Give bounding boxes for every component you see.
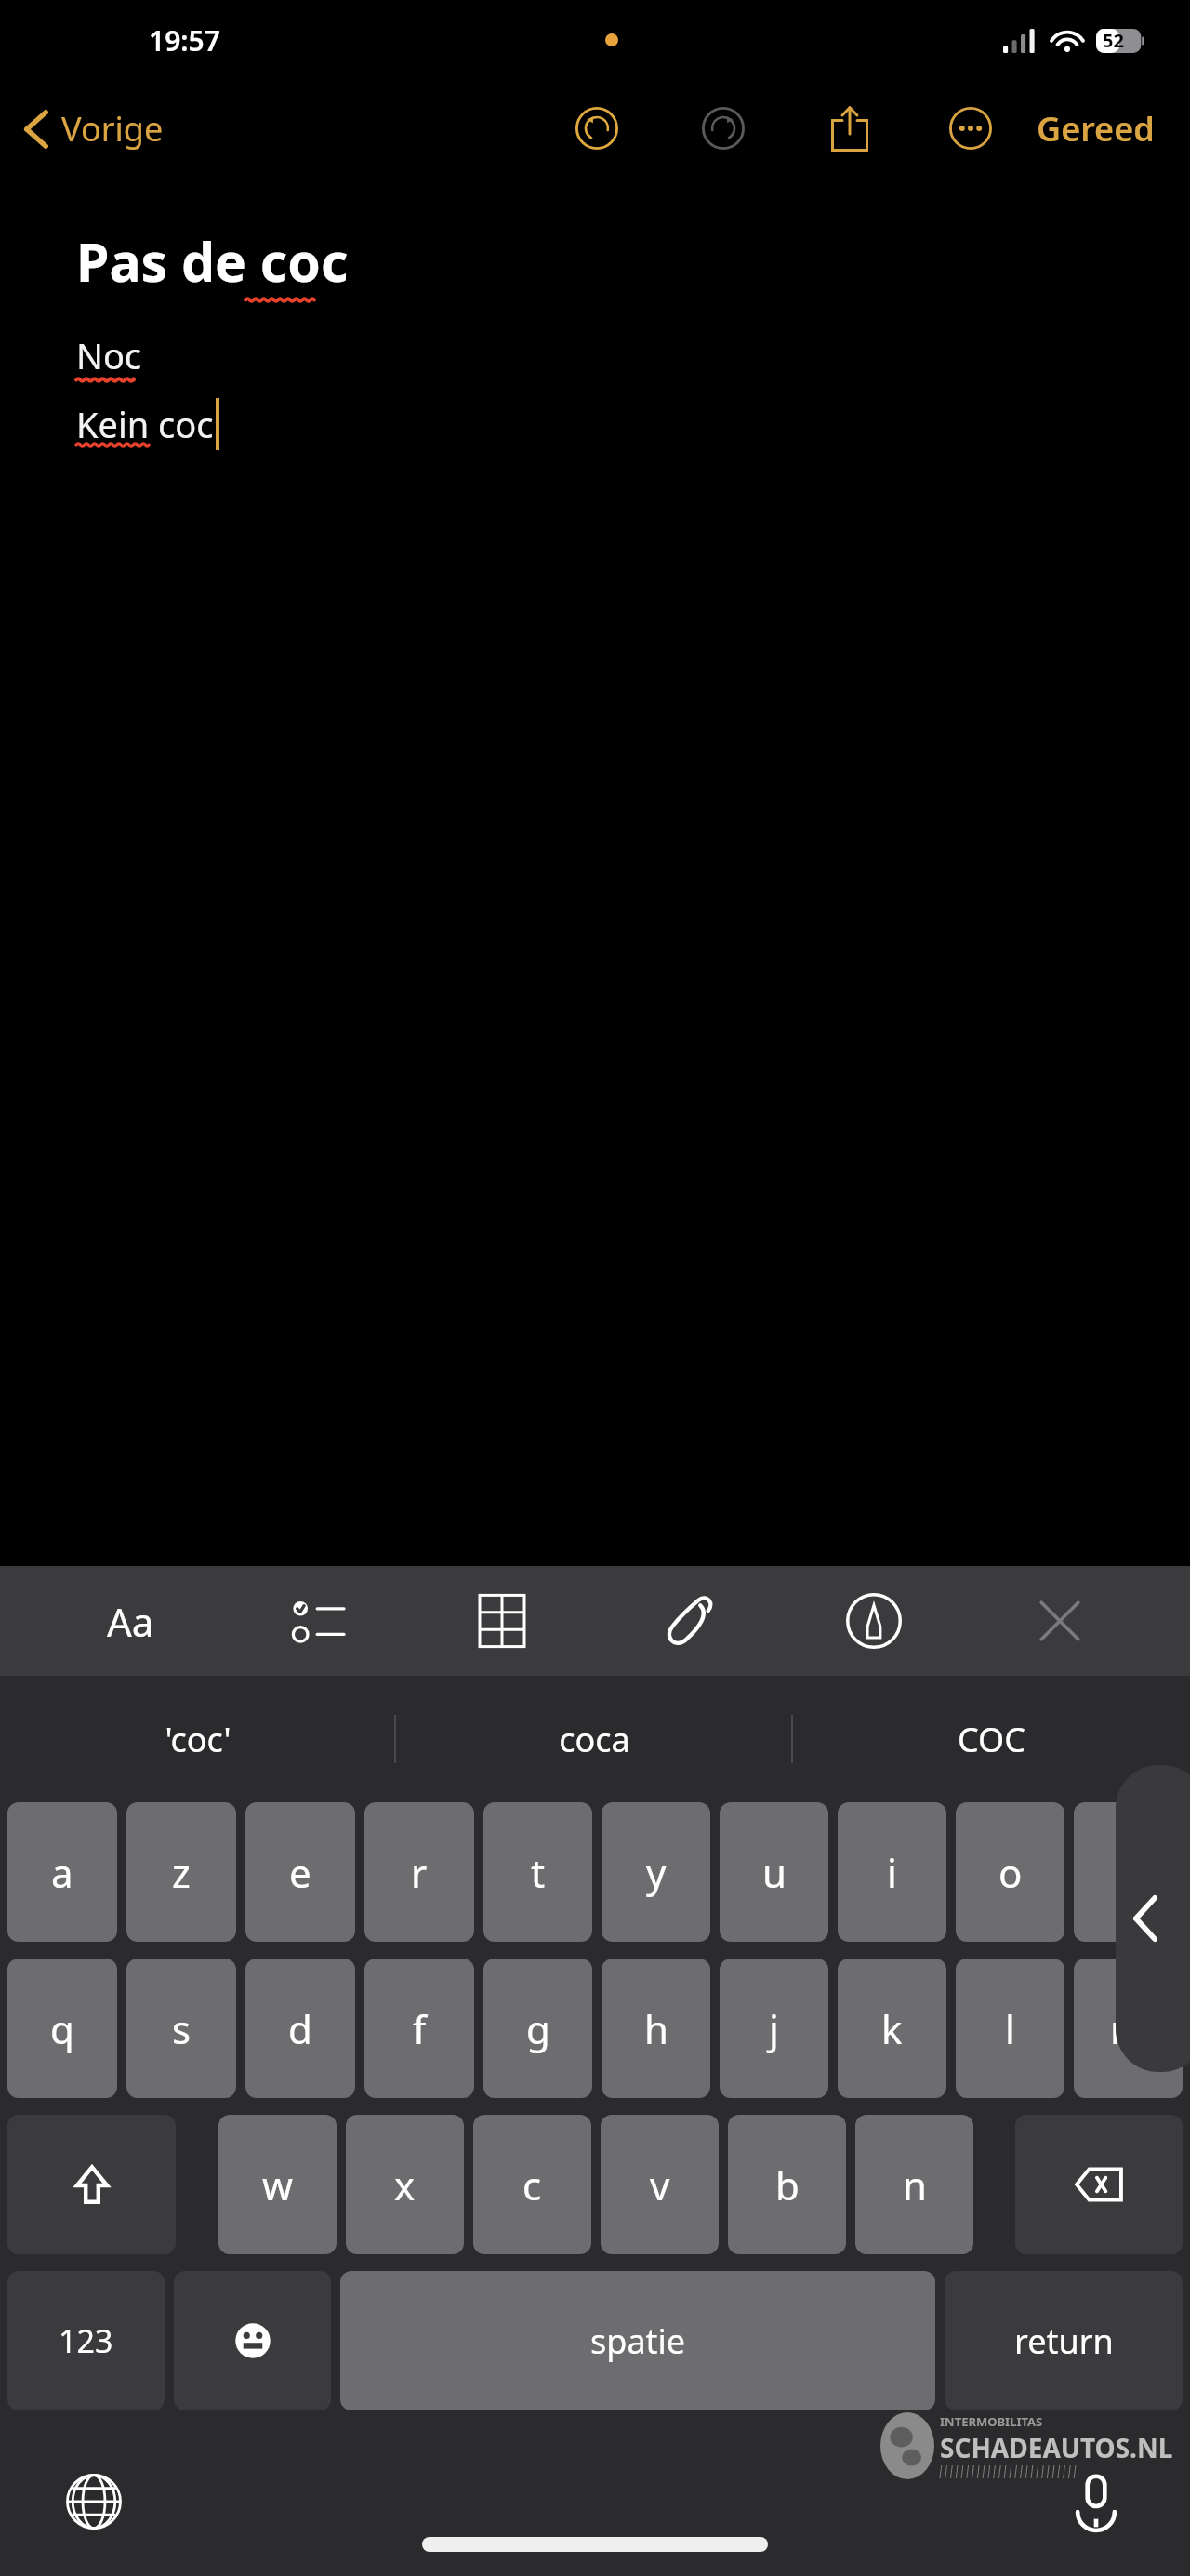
button[interactable]: Aa — [74, 1566, 186, 1676]
staticText: e — [289, 1846, 311, 1899]
staticText: i — [887, 1846, 897, 1899]
staticText: n — [903, 2158, 927, 2211]
button[interactable]: Dictate — [1060, 2465, 1132, 2538]
staticText: return — [1014, 2318, 1114, 2364]
button[interactable]: j — [720, 1959, 828, 2098]
button[interactable]: y — [602, 1802, 710, 1942]
button[interactable]: Keyboard layout — [1116, 1765, 1190, 2072]
staticText: s — [172, 2002, 192, 2055]
button[interactable]: h — [602, 1959, 710, 2098]
button[interactable]: t — [483, 1802, 592, 1942]
staticText: x — [394, 2158, 416, 2211]
button[interactable]: Checklist — [260, 1566, 372, 1676]
button[interactable]: a — [7, 1802, 117, 1942]
button[interactable]: f — [364, 1959, 474, 2098]
button[interactable]: Gereed — [1029, 97, 1162, 161]
button[interactable]: d — [245, 1959, 355, 2098]
button[interactable]: m — [1074, 1959, 1183, 2098]
button[interactable]: COC — [793, 1676, 1190, 1802]
staticText: Aa — [107, 1595, 154, 1648]
staticText: r — [411, 1846, 428, 1899]
staticText: Gereed — [1037, 106, 1155, 152]
button[interactable]: Undo — [562, 94, 631, 163]
staticText: coca — [559, 1717, 630, 1762]
button[interactable]: 123 — [7, 2271, 165, 2410]
button[interactable]: Emoji — [174, 2271, 331, 2410]
staticText: SCHADEAUTOS.NL — [940, 2430, 1173, 2465]
staticText: j — [769, 2002, 779, 2055]
staticText: f — [413, 2002, 427, 2055]
staticText: d — [288, 2002, 312, 2055]
button[interactable]: v — [601, 2115, 719, 2254]
staticText: v — [650, 2158, 670, 2211]
staticText: a — [51, 1846, 73, 1899]
button[interactable]: l — [956, 1959, 1064, 2098]
button[interactable]: s — [126, 1959, 236, 2098]
button[interactable]: Attach — [632, 1566, 744, 1676]
staticText: Pas de coc — [76, 225, 349, 298]
button[interactable]: r — [364, 1802, 474, 1942]
button[interactable]: n — [855, 2115, 973, 2254]
staticText: y — [646, 1846, 667, 1899]
button[interactable]: i — [838, 1802, 946, 1942]
button[interactable]: Share — [815, 94, 884, 163]
staticText: w — [262, 2158, 294, 2211]
staticText: z — [172, 1846, 191, 1899]
staticText: c — [522, 2158, 542, 2211]
button[interactable]: c — [473, 2115, 591, 2254]
button[interactable]: b — [728, 2115, 846, 2254]
button[interactable]: u — [720, 1802, 828, 1942]
staticText: o — [998, 1846, 1023, 1899]
staticText: t — [531, 1846, 546, 1899]
staticText: Vorige — [61, 106, 164, 152]
staticText: l — [1005, 2002, 1015, 2055]
button[interactable]: Change keyboard — [58, 2465, 130, 2538]
button[interactable]: Vorige — [24, 106, 164, 152]
staticText: g — [526, 2002, 550, 2055]
staticText: b — [775, 2158, 800, 2211]
staticText: Noc — [76, 331, 142, 379]
button[interactable]: Close — [1004, 1566, 1116, 1676]
staticText: 123 — [59, 2319, 113, 2362]
staticText: m — [1110, 2002, 1147, 2055]
button[interactable]: spatie — [340, 2271, 935, 2410]
staticText: Kein coc — [76, 400, 214, 448]
button[interactable]: z — [126, 1802, 236, 1942]
button[interactable]: q — [7, 1959, 117, 2098]
staticText: 52 — [1103, 28, 1124, 53]
button[interactable]: k — [838, 1959, 946, 2098]
staticText: h — [644, 2002, 668, 2055]
staticText: u — [762, 1846, 787, 1899]
button[interactable]: return — [945, 2271, 1183, 2410]
button[interactable]: More — [936, 94, 1005, 163]
staticText: q — [50, 2002, 74, 2055]
button[interactable]: e — [245, 1802, 355, 1942]
button[interactable]: g — [483, 1959, 592, 2098]
staticText: 19:57 — [149, 21, 220, 60]
button[interactable]: 'coc' — [0, 1676, 396, 1802]
button[interactable]: o — [956, 1802, 1064, 1942]
button[interactable]: coca — [396, 1676, 793, 1802]
staticText: INTERMOBILITAS — [940, 2413, 1043, 2430]
button[interactable]: x — [346, 2115, 464, 2254]
button[interactable]: Markup — [818, 1566, 930, 1676]
button[interactable]: Table — [446, 1566, 558, 1676]
staticText: COC — [958, 1717, 1025, 1762]
button[interactable]: Shift — [7, 2115, 176, 2254]
button[interactable]: Redo — [689, 94, 758, 163]
button[interactable]: p — [1074, 1802, 1183, 1942]
button[interactable]: Backspace — [1015, 2115, 1183, 2254]
staticText: spatie — [590, 2318, 686, 2364]
button[interactable]: w — [218, 2115, 337, 2254]
staticText: k — [881, 2002, 903, 2055]
staticText: 'coc' — [165, 1717, 231, 1762]
